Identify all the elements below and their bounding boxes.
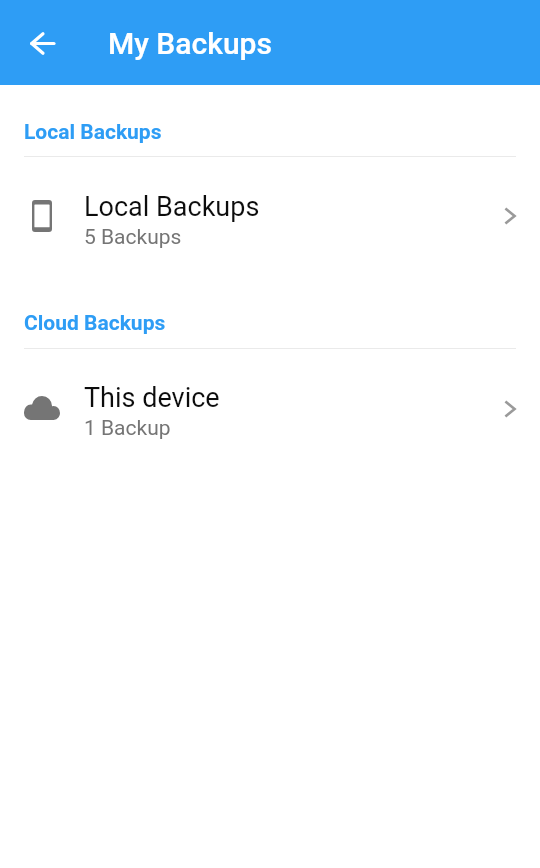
staticText: Cloud Backups bbox=[24, 311, 166, 336]
button[interactable]: Back bbox=[18, 19, 66, 67]
staticText: Local Backups bbox=[24, 120, 162, 145]
staticText: 5 Backups bbox=[84, 225, 182, 250]
staticText: My Backups bbox=[108, 26, 272, 61]
staticText: 1 Backup bbox=[84, 416, 171, 441]
staticText: Local Backups bbox=[84, 191, 260, 223]
button[interactable]: This device bbox=[0, 370, 540, 451]
button[interactable]: Local Backups bbox=[0, 179, 540, 260]
staticText: This device bbox=[84, 382, 220, 414]
